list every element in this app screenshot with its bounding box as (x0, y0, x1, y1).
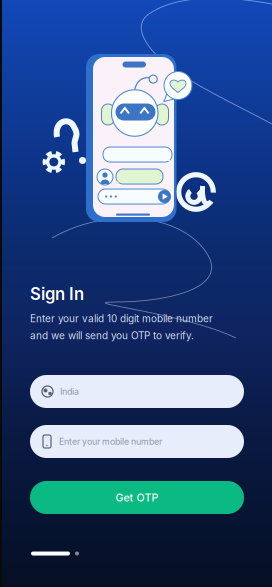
staticText: Enter your valid 10 digit mobile number (30, 312, 213, 325)
staticText: India (60, 386, 79, 397)
staticText: Get OTP (115, 491, 158, 504)
button[interactable]: Enter your mobile number (30, 425, 244, 458)
staticText: Sign In (30, 284, 84, 304)
button[interactable]: Get OTP (30, 481, 244, 514)
staticText: Enter your mobile number (59, 436, 162, 447)
button[interactable]: India (30, 375, 244, 408)
staticText: and we will send you OTP to verify. (30, 329, 194, 342)
